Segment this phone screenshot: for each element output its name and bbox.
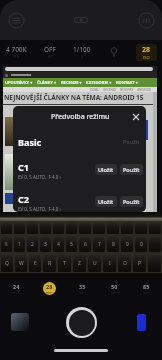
staticText: ČLÁNKY ▾ [37, 80, 57, 85]
staticText: C1 [18, 161, 29, 173]
staticText: S [81, 54, 84, 59]
staticText: KONTAKT ▾ [116, 80, 138, 85]
staticText: C2 [18, 193, 29, 205]
button[interactable]: 1/100 [66, 40, 98, 64]
staticText: NEJNOVĚJŠÍ ČLÁNKY NA TÉMA: ANDROID 15 [4, 93, 144, 102]
button[interactable]: Uložit [95, 164, 117, 175]
staticText: 28 [46, 283, 53, 290]
staticText: EV 0, S AUTO, F 4.0 › [18, 206, 61, 212]
button[interactable]: Take photo [66, 307, 97, 338]
button[interactable]: C2 [13, 190, 146, 212]
staticText: mm [13, 290, 20, 295]
staticText: 4 700K [6, 45, 27, 54]
button[interactable]: Použít [120, 136, 143, 147]
button[interactable] [98, 40, 130, 64]
staticText: E [34, 260, 37, 267]
button[interactable]: 28 [43, 282, 56, 295]
staticText: 0 [140, 241, 143, 248]
button[interactable]: Switch camera [137, 314, 146, 331]
staticText: RECENZE ▾ [61, 80, 82, 85]
button[interactable]: Gallery [11, 313, 29, 331]
staticText: 35 [79, 283, 86, 290]
staticText: 28 [142, 45, 151, 55]
staticText: W [19, 260, 24, 267]
button[interactable]: 24 [10, 282, 23, 295]
staticText: R [48, 260, 52, 267]
staticText: Uložit [98, 166, 114, 173]
staticText: 1 [18, 241, 21, 248]
staticText: 85 [143, 283, 150, 290]
button[interactable]: C1 [13, 158, 146, 186]
staticText: KATEGORIE ▾ [86, 80, 112, 85]
staticText: 5 [70, 241, 73, 248]
button[interactable]: Použít [120, 196, 143, 207]
staticText: Použít [123, 166, 140, 173]
staticText: mm [143, 290, 150, 295]
button[interactable]: More options [135, 9, 157, 31]
staticText: 9 [126, 241, 129, 248]
staticText: 2 [31, 241, 34, 248]
staticText: WB [13, 54, 20, 59]
staticText: 8 [112, 241, 115, 248]
staticText: Z [78, 260, 81, 267]
button[interactable]: Basic [13, 130, 146, 158]
staticText: I [109, 260, 111, 267]
staticText: EV 0, S AUTO, F 4.0 › [18, 174, 61, 180]
staticText: Basic [18, 136, 42, 148]
button[interactable]: 85 [140, 282, 153, 295]
button[interactable]: 4 700K [0, 40, 33, 64]
staticText: Předvolba režimu [51, 112, 110, 122]
button[interactable]: Close [130, 111, 142, 123]
staticText: P [138, 260, 142, 267]
staticText: 24 [13, 283, 20, 290]
staticText: mm [46, 290, 53, 295]
button[interactable]: 50 [108, 282, 121, 295]
button[interactable]: 35 [76, 282, 89, 295]
staticText: 6 [84, 241, 87, 248]
staticText: AF [48, 54, 53, 59]
staticText: 1/100 [73, 45, 91, 54]
staticText: Použít [123, 138, 140, 145]
staticText: 7 [98, 241, 101, 248]
staticText: Q [5, 260, 9, 267]
staticText: mm [79, 290, 86, 295]
button[interactable]: OFF [33, 40, 66, 64]
staticText: ISO [143, 55, 150, 60]
button[interactable]: 28 [136, 44, 157, 61]
staticText: U [93, 260, 97, 267]
staticText: DOMŮ RECENZE NOVINKY ANDROID [90, 88, 151, 92]
staticText: 4 [57, 241, 60, 248]
staticText: O [123, 260, 127, 267]
button[interactable]: Flash [70, 9, 92, 31]
staticText: § [5, 241, 8, 248]
staticText: UPOUTÁVKY ▾ [5, 80, 33, 85]
staticText: 3 [44, 241, 47, 248]
staticText: OFF [44, 45, 56, 54]
staticText: mm [111, 290, 118, 295]
staticText: Uložit [98, 198, 114, 205]
staticText: Použít [123, 198, 140, 205]
staticText: T [63, 260, 66, 267]
staticText: 50 [111, 283, 118, 290]
button[interactable]: Uložit [95, 196, 117, 207]
button[interactable]: Použít [120, 164, 143, 175]
button[interactable]: Settings [5, 9, 27, 31]
